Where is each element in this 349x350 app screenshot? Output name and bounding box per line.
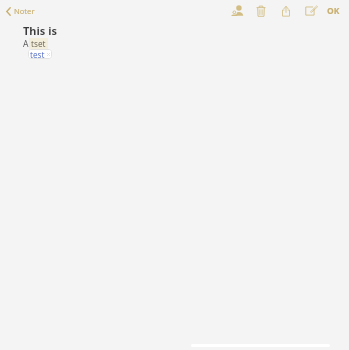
- staticText: test: [30, 49, 45, 59]
- staticText: Noter: [14, 6, 35, 16]
- button[interactable]: OK: [325, 3, 342, 19]
- staticText: This is: [23, 23, 57, 38]
- button[interactable]: Share: [278, 2, 294, 20]
- button[interactable]: Add people: [228, 2, 246, 19]
- staticText: OK: [327, 5, 340, 17]
- button[interactable]: Delete: [253, 2, 269, 20]
- staticText: tset: [31, 38, 46, 49]
- button[interactable]: test: [28, 49, 52, 59]
- button[interactable]: Noter: [3, 3, 38, 19]
- button[interactable]: Edit: [302, 2, 321, 19]
- staticText: A: [23, 38, 29, 50]
